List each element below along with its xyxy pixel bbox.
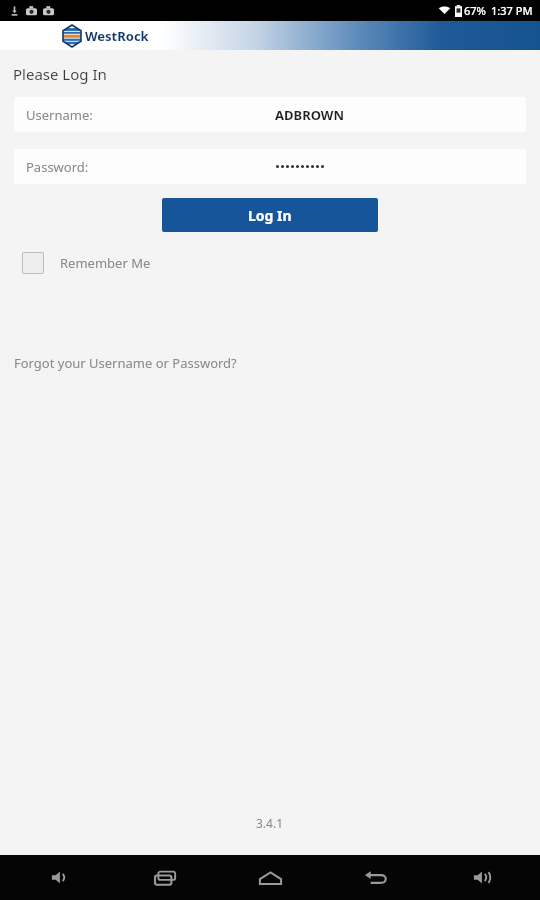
staticText: Username: — [26, 106, 93, 124]
staticText: Forgot your Username or Password? — [14, 354, 237, 372]
staticText: Please Log In — [13, 64, 107, 84]
button[interactable]: Password: — [14, 149, 526, 184]
staticText: 67% — [464, 3, 486, 18]
staticText: Password: — [26, 158, 89, 176]
button[interactable]: Forgot your Username or Password? — [13, 351, 238, 375]
button[interactable]: Back — [353, 855, 399, 900]
staticText: Log In — [248, 206, 292, 225]
staticText: WestRock — [85, 27, 149, 45]
button[interactable]: Volume down — [36, 855, 82, 900]
button[interactable]: Username: — [14, 97, 526, 132]
staticText: 3.4.1 — [256, 815, 284, 831]
button[interactable]: Remember Me — [22, 248, 161, 278]
button[interactable]: Recent apps — [142, 855, 188, 900]
staticText: ADBROWN — [275, 106, 344, 124]
staticText: Remember Me — [60, 254, 151, 272]
staticText: 1:37 PM — [491, 3, 533, 18]
button[interactable]: Home — [247, 855, 293, 900]
button[interactable]: Volume up — [458, 855, 504, 900]
button[interactable]: Log In — [162, 198, 378, 232]
